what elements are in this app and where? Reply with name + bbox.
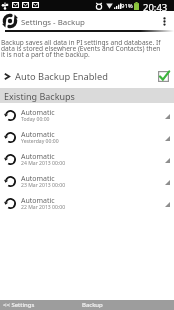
button[interactable]: << Settings: [0, 301, 52, 309]
button[interactable]: Auto Backup Enabled: [0, 66, 174, 86]
staticText: Automatic: [21, 108, 55, 118]
button[interactable]: Automatic: [0, 171, 174, 193]
staticText: 24 Mar 2013 00:00: [21, 160, 66, 167]
button[interactable]: More options: [158, 15, 170, 27]
staticText: Yesterday 00:00: [21, 138, 59, 145]
staticText: Automatic: [21, 152, 55, 162]
staticText: 20:43: [143, 1, 168, 12]
staticText: 23 Mar 2013 00:00: [21, 182, 66, 189]
staticText: Backup: [82, 301, 103, 309]
staticText: Existing Backups: [4, 90, 75, 102]
button[interactable]: Automatic: [0, 127, 174, 149]
staticText: Auto Backup Enabled: [15, 70, 108, 83]
staticText: Today 00:00: [21, 116, 50, 123]
button[interactable]: Automatic: [0, 105, 174, 127]
staticText: Automatic: [21, 196, 55, 206]
staticText: Automatic: [21, 130, 55, 140]
staticText: 91%: [121, 2, 133, 10]
button[interactable]: Automatic: [0, 149, 174, 171]
staticText: << Settings: [3, 301, 35, 309]
staticText: Backup saves all data in PI settings and…: [1, 38, 164, 59]
button[interactable]: Automatic: [0, 193, 174, 215]
staticText: Settings - Backup: [21, 17, 85, 28]
staticText: 22 Mar 2013 00:00: [21, 204, 66, 211]
staticText: Automatic: [21, 174, 55, 184]
